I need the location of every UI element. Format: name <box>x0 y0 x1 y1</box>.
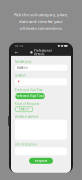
staticText: Kind of Request <box>15 102 39 106</box>
staticText: Elevation <box>17 66 28 69</box>
button[interactable]: Elevation <box>15 65 67 71</box>
button[interactable]: Request <box>29 158 53 164</box>
staticText: date and time for your <box>19 19 63 24</box>
staticText: Subcategory <box>15 60 31 63</box>
staticText: Pick the subcategory, place, <box>14 12 68 17</box>
staticText: Job description <box>15 143 37 146</box>
staticText: ← <box>15 50 18 55</box>
staticText: Preferred Visit Time <box>15 88 43 92</box>
staticText: Preferred Visit Time <box>15 94 45 98</box>
staticText: 📍 <box>17 80 20 83</box>
staticText: ultimate convenience. <box>19 26 62 31</box>
staticText: Elevation <box>18 108 29 111</box>
button[interactable]: Preferred Visit Time <box>15 93 45 99</box>
staticText: Professional details <box>34 49 52 56</box>
staticText: ⌄ <box>63 66 65 69</box>
button[interactable]: Elevation <box>15 107 33 112</box>
staticText: Location <box>15 74 26 77</box>
staticText: Detailed address <box>15 115 38 118</box>
staticText: Request <box>35 159 47 162</box>
button[interactable]: Back <box>13 49 20 55</box>
staticText: 10:10 <box>14 44 23 48</box>
